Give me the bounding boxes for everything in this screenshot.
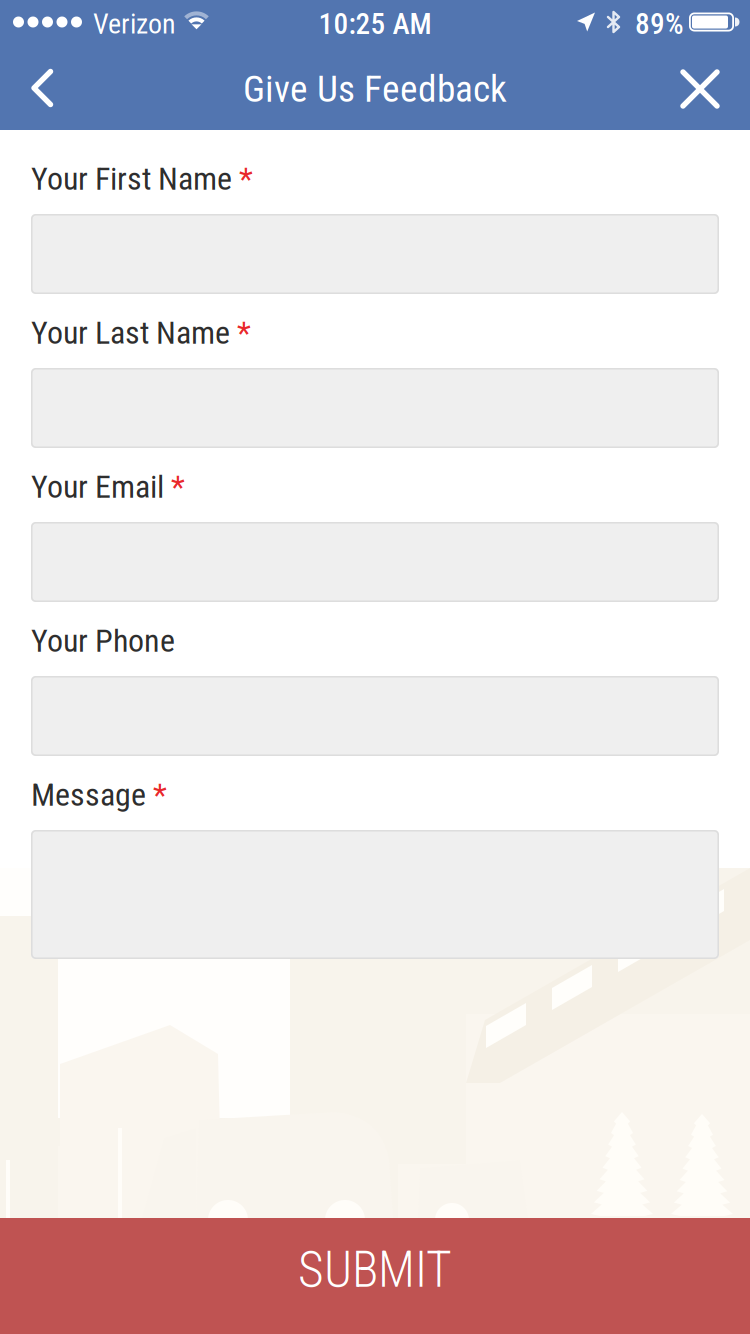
staticText: SUBMIT [298,1241,452,1299]
staticText: Your Email [31,468,164,505]
button[interactable]: Close [665,48,735,130]
button[interactable]: Back [10,48,74,130]
staticText: Your Last Name [31,314,230,351]
staticText: Verizon [93,8,176,40]
staticText: * [146,776,167,813]
staticText: * [164,468,185,505]
staticText: * [232,160,253,197]
staticText: * [230,314,251,351]
staticText: 89% [635,7,684,41]
staticText: 10:25 AM [318,7,431,41]
staticText: Your First Name [31,160,232,197]
staticText: Message [31,776,146,813]
button[interactable]: SUBMIT [0,1218,750,1334]
staticText: Your Phone [31,622,175,659]
staticText: Give Us Feedback [243,67,507,111]
